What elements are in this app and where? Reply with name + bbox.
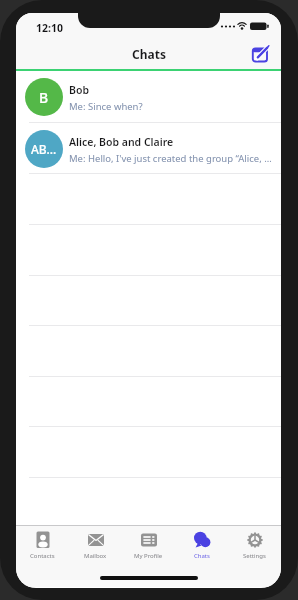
button[interactable]: My Profile bbox=[122, 531, 175, 560]
staticText: B bbox=[39, 88, 49, 107]
button[interactable]: Mailbox bbox=[69, 531, 122, 560]
staticText: Chats bbox=[132, 46, 166, 62]
button[interactable]: Contacts bbox=[16, 531, 69, 560]
button[interactable]: AB... bbox=[16, 123, 281, 174]
staticText: Mailbox bbox=[84, 552, 107, 560]
button[interactable]: Settings bbox=[228, 531, 281, 560]
button[interactable]: Chats bbox=[175, 531, 228, 560]
button[interactable]: B bbox=[16, 71, 281, 123]
staticText: 12:10 bbox=[36, 21, 63, 35]
staticText: Chats bbox=[194, 552, 210, 560]
staticText: AB... bbox=[31, 141, 57, 157]
button[interactable] bbox=[252, 44, 270, 62]
staticText: Bob bbox=[69, 83, 89, 97]
staticText: Me: Hello, I've just created the group “… bbox=[69, 152, 276, 165]
staticText: My Profile bbox=[134, 552, 163, 560]
staticText: Settings bbox=[243, 552, 266, 560]
staticText: Contacts bbox=[30, 552, 55, 560]
staticText: Alice, Bob and Claire bbox=[69, 135, 174, 149]
staticText: Me: Since when? bbox=[69, 100, 143, 113]
